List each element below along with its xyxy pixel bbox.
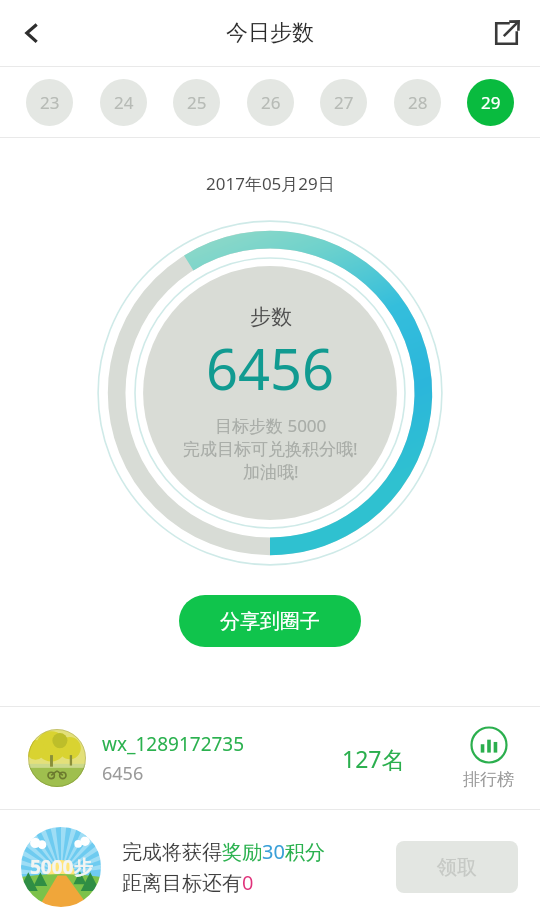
staticText: 29 <box>481 91 501 114</box>
button[interactable]: 领取 <box>396 841 518 893</box>
button[interactable]: 28 <box>394 79 441 126</box>
staticText: 23 <box>40 91 60 114</box>
button[interactable]: 分享到圈子 <box>179 595 361 647</box>
staticText: 完成目标可兑换积分哦! <box>183 437 358 460</box>
staticText: 目标步数 5000 <box>215 414 327 437</box>
button[interactable]: 29 <box>467 79 514 126</box>
staticText: 领取 <box>437 855 477 880</box>
staticText: 今日步数 <box>226 19 314 47</box>
staticText: 26 <box>261 91 281 114</box>
staticText: 25 <box>187 91 207 114</box>
button[interactable]: 27 <box>320 79 367 126</box>
staticText: wx_1289172735 <box>102 731 245 757</box>
staticText: 6456 <box>102 761 144 786</box>
staticText: 分享到圈子 <box>220 609 320 634</box>
button[interactable]: Share <box>480 7 532 59</box>
button[interactable]: 25 <box>173 79 220 126</box>
staticText: 排行榜 <box>463 769 514 790</box>
button[interactable]: wx_1289172735 <box>0 707 540 809</box>
staticText: 24 <box>114 91 134 114</box>
button[interactable]: 26 <box>247 79 294 126</box>
button[interactable]: 24 <box>100 79 147 126</box>
staticText: 27 <box>334 91 354 114</box>
staticText: 6456 <box>206 330 335 406</box>
staticText: 2017年05月29日 <box>206 172 335 195</box>
staticText: 127名 <box>342 743 405 774</box>
staticText: 加油哦! <box>243 460 299 483</box>
staticText: 步数 <box>250 304 292 330</box>
staticText: 28 <box>408 91 428 114</box>
staticText: 完成将获得奖励30积分 <box>122 838 325 865</box>
button[interactable]: 23 <box>26 79 73 126</box>
staticText: 距离目标还有0 <box>122 869 254 896</box>
staticText: 5000步 <box>30 854 93 880</box>
button[interactable]: Back <box>6 7 58 59</box>
button[interactable]: 排行榜 <box>459 726 518 790</box>
